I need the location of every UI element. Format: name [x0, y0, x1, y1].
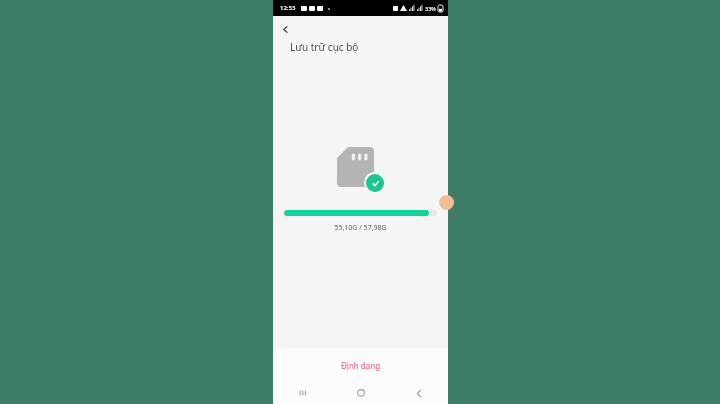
staticText: 33%: [425, 5, 436, 12]
staticText: Định dạng: [341, 360, 381, 371]
button[interactable]: Back: [390, 382, 448, 404]
button[interactable]: Định dạng: [273, 348, 448, 382]
button[interactable]: Recents: [273, 382, 332, 404]
staticText: Lưu trữ cục bộ: [290, 40, 359, 54]
staticText: 55,10G / 57,98G: [334, 223, 387, 233]
button[interactable]: Home: [332, 382, 390, 404]
button[interactable]: Back: [276, 20, 294, 38]
staticText: 12:53: [280, 4, 296, 12]
